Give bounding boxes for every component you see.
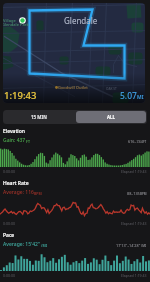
staticText: MI	[137, 94, 144, 101]
staticText: 15 MIN	[31, 114, 47, 120]
staticText: Village	[3, 18, 16, 23]
staticText: Elapsed 1:19:43	[121, 169, 147, 174]
staticText: FT	[26, 139, 30, 144]
staticText: Average: 116	[3, 189, 34, 196]
staticText: ALL	[107, 114, 115, 120]
staticText: OAK ST	[106, 87, 117, 91]
staticText: Pace	[3, 232, 15, 239]
staticText: 17'13"–14'28"	[116, 243, 141, 248]
staticText: 0:00:00	[3, 169, 15, 174]
staticText: Goodwill Outlet	[58, 85, 88, 90]
staticText: 0:00:00	[3, 273, 15, 278]
staticText: BPM	[34, 191, 42, 196]
staticText: Heart Rate	[3, 180, 29, 187]
staticText: 1:19:43	[4, 89, 37, 102]
staticText: 0:00:00	[3, 221, 15, 226]
staticText: Elapsed 1:19:43	[121, 273, 147, 278]
staticText: Glendale Park	[3, 22, 29, 27]
staticText: /MI	[141, 244, 147, 248]
staticText: Elapsed 1:19:43	[121, 221, 147, 226]
staticText: 88–135	[127, 191, 140, 196]
button[interactable]: 15 MIN	[3, 110, 75, 124]
staticText: 616–744	[128, 139, 143, 144]
staticText: BPM	[140, 192, 147, 196]
button[interactable]: ALL	[76, 111, 146, 123]
staticText: Glendale	[64, 15, 98, 26]
staticText: Average: 15'42"	[3, 241, 41, 248]
staticText: /MI	[41, 243, 47, 248]
staticText: Gain: 437	[3, 137, 26, 144]
staticText: 5.07	[120, 90, 137, 102]
staticText: FT	[143, 140, 147, 144]
staticText: Elevation	[3, 128, 25, 135]
